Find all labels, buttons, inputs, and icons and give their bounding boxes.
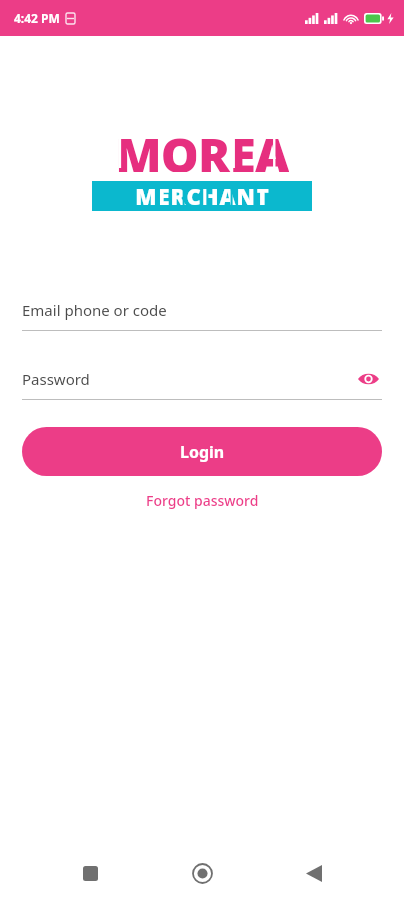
staticText: MOREA — [115, 122, 289, 172]
staticText: 4:42 PM — [14, 10, 60, 26]
button[interactable]: Back — [292, 851, 336, 895]
staticText: Login — [180, 441, 225, 463]
staticText: MERCHANT — [135, 181, 270, 211]
button[interactable]: Forgot password — [140, 489, 265, 512]
button[interactable]: Login — [22, 427, 382, 476]
staticText: Password — [22, 369, 90, 389]
button[interactable]: Email phone or code — [22, 297, 382, 331]
staticText: Email phone or code — [22, 300, 167, 320]
button[interactable]: Show password — [354, 366, 382, 392]
staticText: Forgot password — [146, 491, 259, 510]
button[interactable]: Password — [22, 366, 382, 400]
button[interactable]: Home — [180, 851, 224, 895]
button[interactable]: Recent apps — [68, 851, 112, 895]
